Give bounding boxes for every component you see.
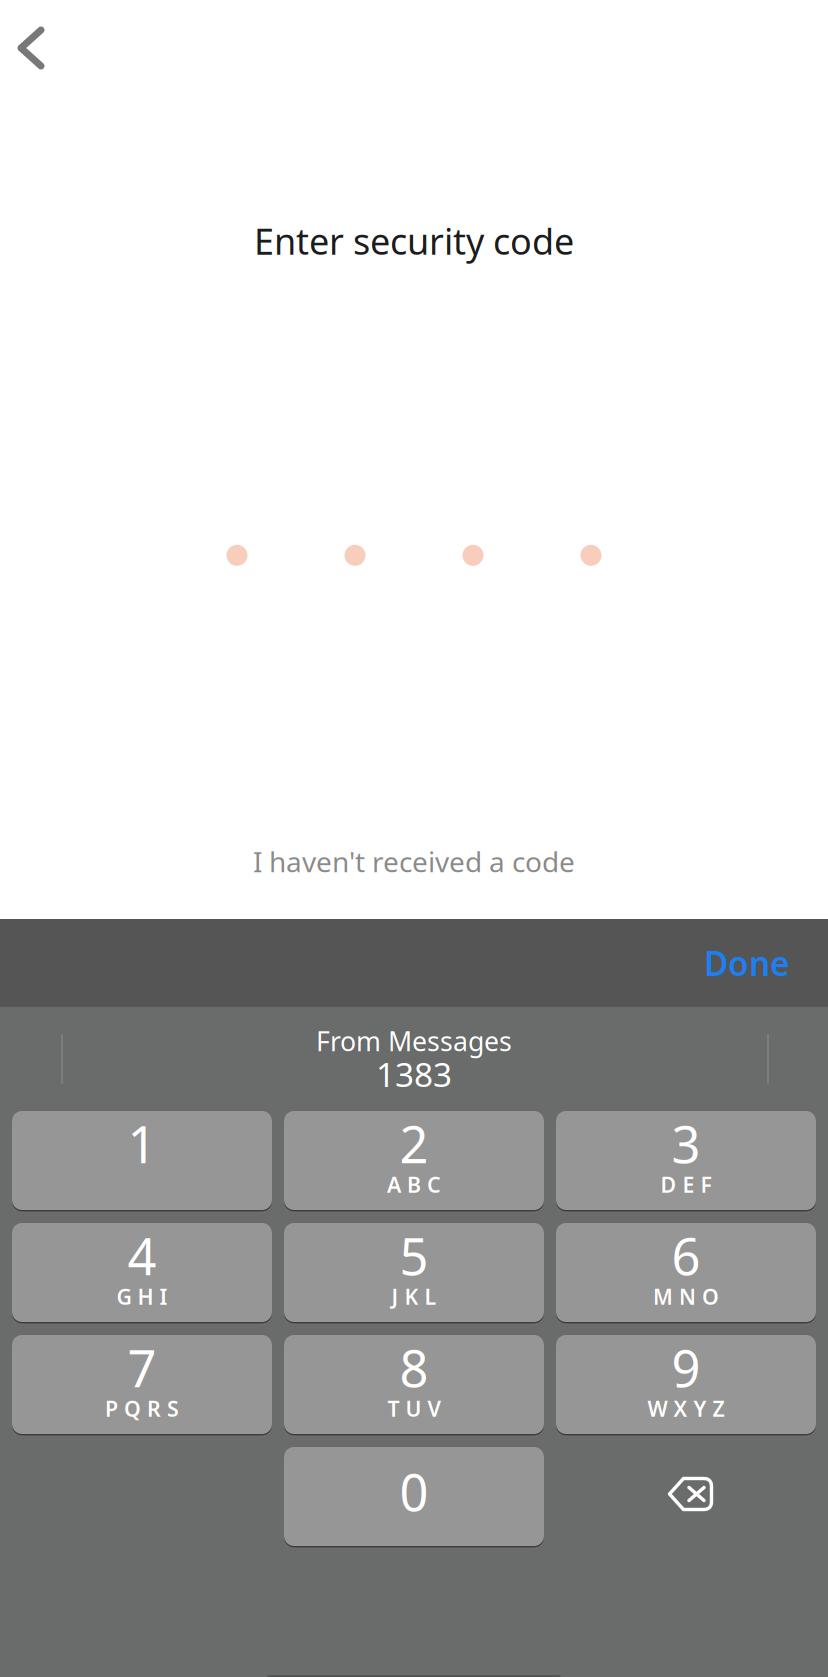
staticText: G H I [116, 1282, 167, 1311]
button[interactable]: Delete [556, 1447, 816, 1546]
staticText: D E F [660, 1170, 711, 1199]
button[interactable]: 0 [284, 1447, 544, 1546]
button[interactable]: 6 [556, 1223, 816, 1322]
staticText: 6 [671, 1222, 700, 1289]
button[interactable]: Back [0, 0, 72, 90]
staticText: M N O [653, 1282, 719, 1311]
button[interactable]: 8 [284, 1335, 544, 1434]
staticText: A B C [387, 1170, 441, 1199]
staticText: P Q R S [105, 1394, 179, 1423]
staticText: 5 [399, 1222, 428, 1289]
staticText: 1383 [376, 1052, 452, 1096]
staticText: Enter security code [254, 217, 574, 265]
staticText: I haven't received a code [253, 843, 575, 880]
staticText: From Messages [316, 1023, 512, 1059]
staticText: Done [704, 941, 790, 985]
staticText: J K L [391, 1282, 436, 1311]
staticText: W X Y Z [647, 1394, 724, 1423]
staticText: 9 [671, 1334, 700, 1401]
staticText: 7 [127, 1334, 156, 1401]
staticText: 0 [399, 1458, 428, 1525]
button[interactable]: 1 [12, 1111, 272, 1210]
button[interactable]: I haven't received a code [213, 833, 615, 890]
button[interactable]: 3 [556, 1111, 816, 1210]
staticText: 1 [127, 1110, 156, 1177]
button[interactable]: Done [674, 919, 828, 1007]
button[interactable]: 7 [12, 1335, 272, 1434]
button[interactable]: 2 [284, 1111, 544, 1210]
staticText: 3 [671, 1110, 700, 1177]
staticText: 8 [399, 1334, 428, 1401]
button[interactable]: 5 [284, 1223, 544, 1322]
staticText: 2 [399, 1110, 428, 1177]
staticText: T U V [387, 1394, 440, 1423]
staticText: 4 [127, 1222, 156, 1289]
button[interactable]: 4 [12, 1223, 272, 1322]
button[interactable]: 9 [556, 1335, 816, 1434]
